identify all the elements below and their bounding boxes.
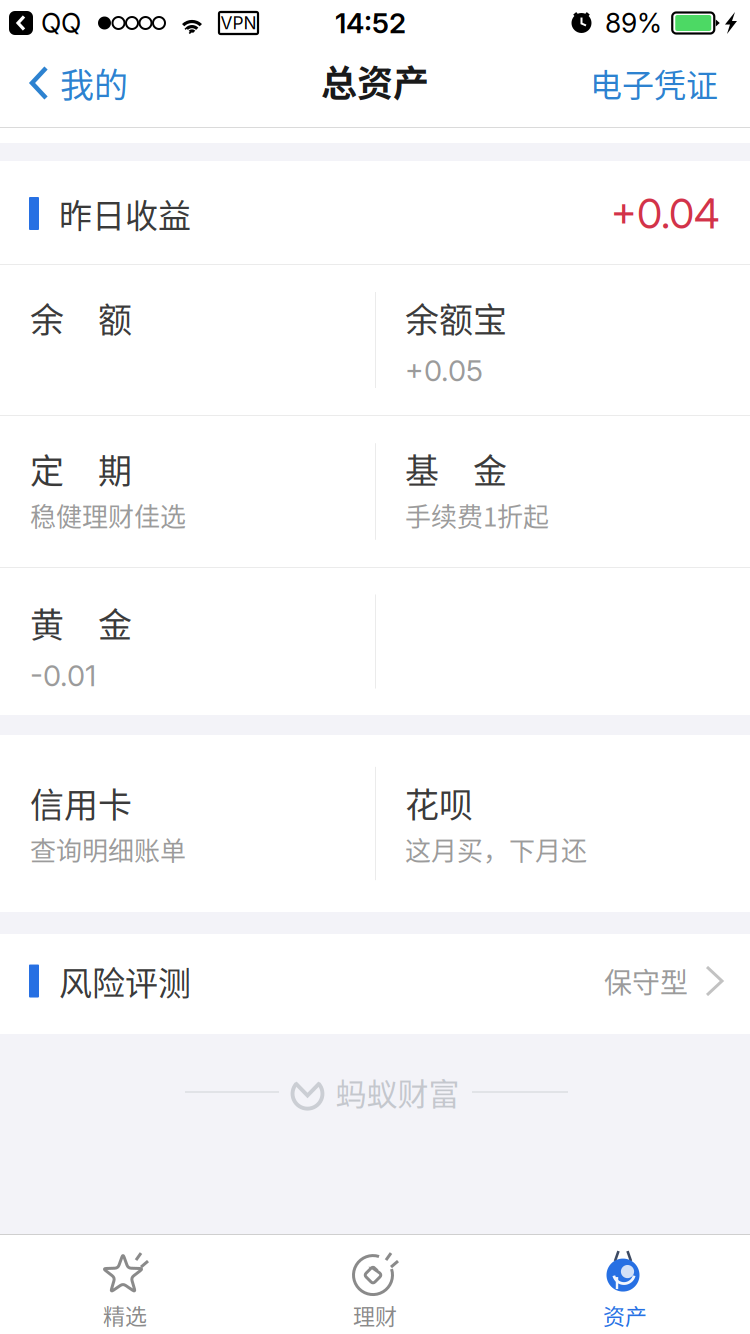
button[interactable]: 精选 xyxy=(0,1234,250,1334)
staticText: 保守型 xyxy=(604,961,688,1001)
staticText: 基 金 xyxy=(405,444,507,493)
button[interactable]: 黄 金 xyxy=(0,568,375,715)
staticText: 稳健理财佳选 xyxy=(30,496,186,534)
staticText: 我的 xyxy=(60,58,128,108)
button[interactable]: 基 金 xyxy=(375,416,750,567)
button[interactable]: 花呗 xyxy=(375,735,750,912)
button[interactable]: 电子凭证 xyxy=(560,63,750,103)
staticText: 蚂蚁财富 xyxy=(335,1070,459,1114)
staticText: 总资产 xyxy=(321,55,429,107)
staticText: 余 额 xyxy=(30,293,132,342)
staticText: 资产 xyxy=(603,1299,647,1331)
staticText: QQ xyxy=(41,7,81,39)
button[interactable]: 余 额 xyxy=(0,265,375,415)
button[interactable]: 资产 xyxy=(500,1234,750,1334)
button[interactable]: 风险评测 xyxy=(0,934,750,1034)
staticText: 余额宝 xyxy=(405,293,507,342)
button[interactable]: 余额宝 xyxy=(375,265,750,415)
staticText: 定 期 xyxy=(30,444,132,493)
staticText: 14:52 xyxy=(335,6,406,40)
staticText: 风险评测 xyxy=(59,957,191,1005)
staticText: VPN xyxy=(220,12,256,33)
staticText: 这月买，下月还 xyxy=(405,830,587,868)
staticText: -0.01 xyxy=(30,658,96,693)
staticText: 理财 xyxy=(353,1299,397,1331)
staticText: 昨日收益 xyxy=(59,190,191,237)
staticText: 精选 xyxy=(103,1299,147,1331)
button[interactable]: 我的 xyxy=(0,63,150,103)
button[interactable]: 昨日收益 xyxy=(0,161,750,264)
staticText: +0.05 xyxy=(405,353,483,388)
staticText: +0.04 xyxy=(611,189,719,238)
staticText: 信用卡 xyxy=(30,778,132,827)
staticText: 手续费1折起 xyxy=(405,496,549,534)
button[interactable]: 理财 xyxy=(250,1234,500,1334)
staticText: 黄 金 xyxy=(30,598,132,647)
staticText: 89% xyxy=(605,7,662,39)
button[interactable]: 信用卡 xyxy=(0,735,375,912)
staticText: 花呗 xyxy=(405,778,473,827)
staticText: 电子凭证 xyxy=(590,60,718,106)
button[interactable]: 定 期 xyxy=(0,416,375,567)
staticText: 查询明细账单 xyxy=(30,830,186,868)
